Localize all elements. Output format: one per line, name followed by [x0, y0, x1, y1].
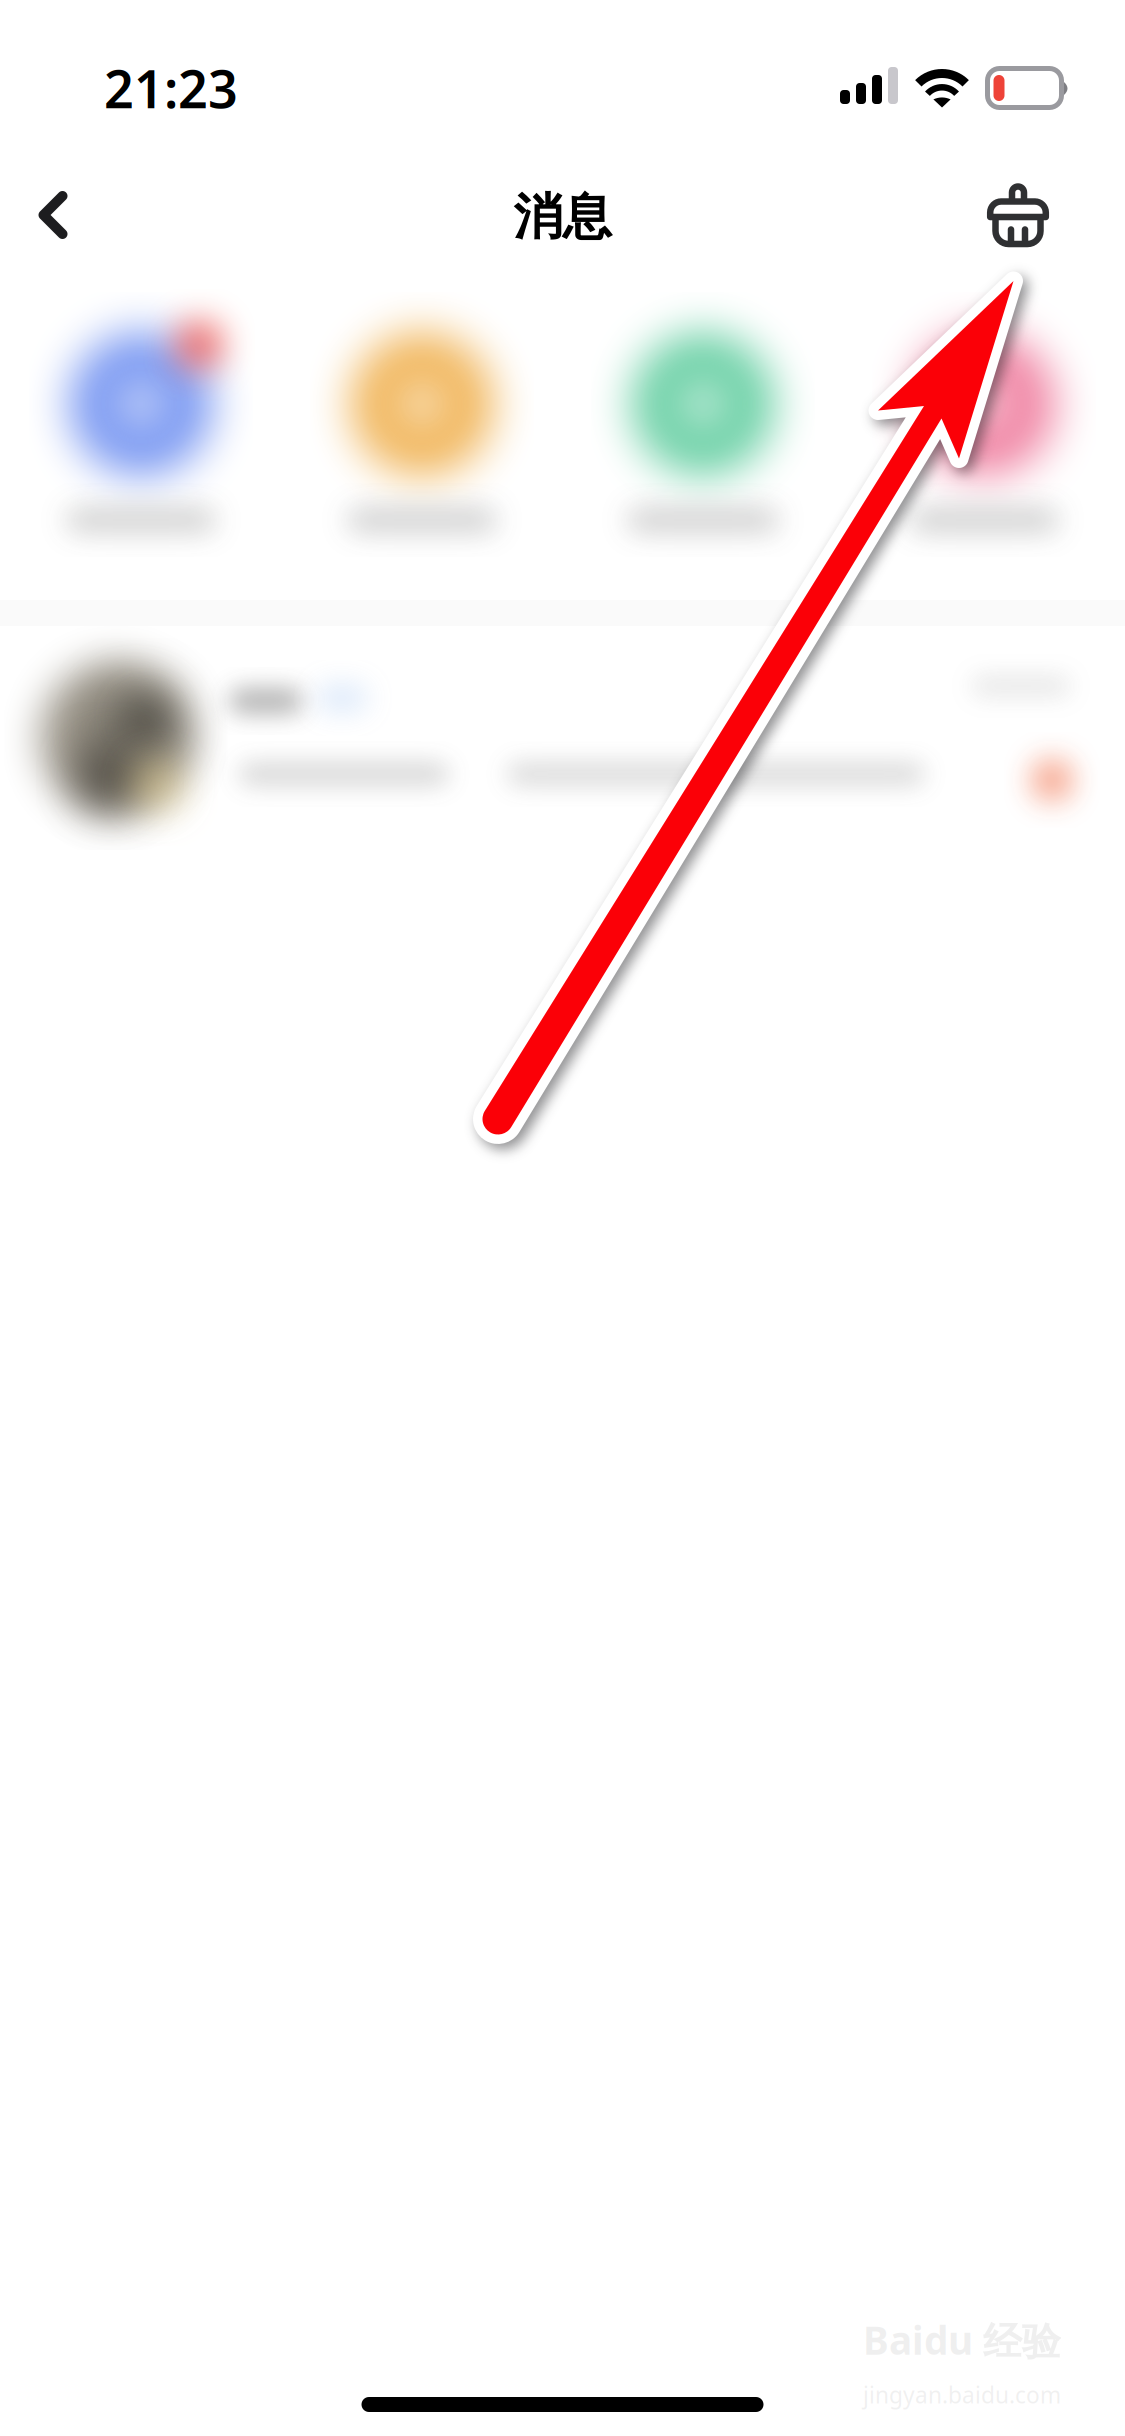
staticText: Baidu 经验 [863, 2314, 1061, 2366]
button[interactable] [0, 626, 1125, 850]
staticText: 21:23 [104, 53, 238, 123]
staticText: 消息 [513, 187, 611, 247]
button[interactable] [843, 310, 1124, 600]
button[interactable] [281, 310, 562, 600]
button[interactable] [0, 310, 281, 600]
button[interactable] [562, 310, 843, 600]
button[interactable]: Back [0, 160, 108, 270]
button[interactable]: Clear all messages [963, 163, 1073, 273]
staticText: jingyan.baidu.com [863, 2380, 1061, 2410]
